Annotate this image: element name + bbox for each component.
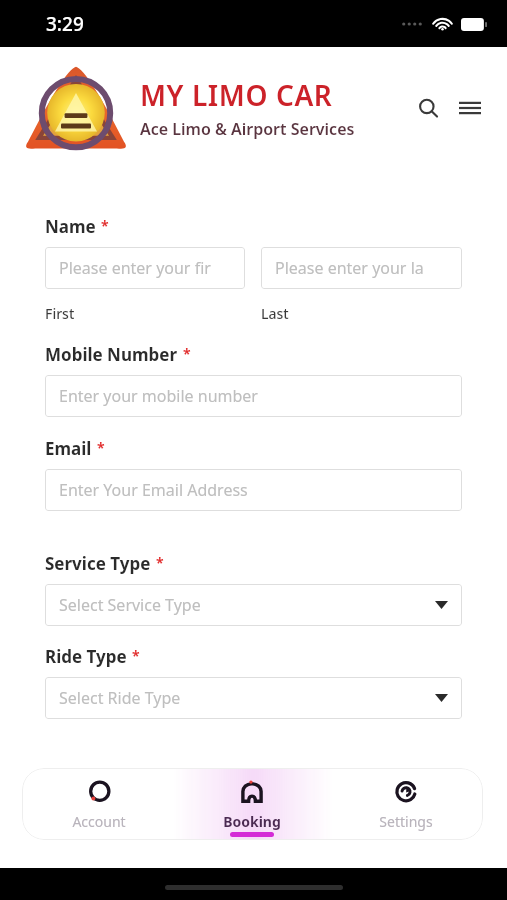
staticText: * (101, 216, 109, 235)
staticText: Enter Your Email Address (59, 479, 248, 501)
staticText: MY LIMO CAR (140, 76, 333, 114)
staticText: * (97, 438, 105, 457)
button[interactable]: Search (411, 91, 445, 125)
staticText: Please enter your fir (59, 257, 211, 279)
staticText: Booking (223, 812, 281, 831)
button[interactable]: Settings (329, 768, 483, 840)
staticText: * (156, 553, 164, 572)
staticText: * (132, 646, 140, 665)
button[interactable]: Enter your mobile number (45, 375, 462, 417)
button[interactable]: Account (22, 768, 175, 840)
button[interactable]: Select Service Type (45, 584, 462, 626)
button[interactable]: Enter Your Email Address (45, 469, 462, 511)
staticText: Email (45, 437, 92, 460)
staticText: Please enter your la (275, 257, 424, 279)
staticText: Account (72, 812, 126, 831)
staticText: Address Line 1 (45, 816, 143, 835)
staticText: Select Service Type (59, 594, 201, 616)
staticText: Mobile Number (45, 343, 178, 366)
button[interactable]: Please enter your fir (45, 247, 245, 289)
button[interactable]: Booking (175, 768, 329, 840)
staticText: Select Ride Type (59, 687, 181, 709)
staticText: Name (45, 215, 96, 238)
staticText: First (45, 304, 75, 323)
staticText: 3:29 (46, 11, 84, 37)
staticText: Ace Limo & Airport Services (140, 118, 355, 140)
staticText: * (183, 344, 191, 363)
button[interactable]: Please enter your la (261, 247, 462, 289)
button[interactable]: Select Ride Type (45, 677, 462, 719)
staticText: Settings (379, 812, 433, 831)
staticText: Last (261, 304, 289, 323)
staticText: Ride Type (45, 645, 127, 668)
staticText: Enter your mobile number (59, 385, 258, 407)
staticText: Service Type (45, 552, 151, 575)
button[interactable]: Menu (453, 91, 487, 125)
